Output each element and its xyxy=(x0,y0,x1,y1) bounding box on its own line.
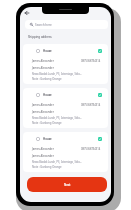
staticText: House xyxy=(43,137,52,141)
staticText: House xyxy=(43,49,52,53)
staticText: James Alexander xyxy=(32,66,54,70)
button[interactable]: Edit address xyxy=(98,49,102,53)
button[interactable]: House xyxy=(23,132,108,172)
staticText: Note : Garbong Orange xyxy=(32,121,62,125)
button[interactable]: Edit address xyxy=(98,137,102,141)
staticText: Shipping address xyxy=(28,35,52,39)
staticText: James Alexander xyxy=(32,110,54,114)
staticText: James Alexander xyxy=(32,103,54,107)
button[interactable]: Edit address xyxy=(98,93,102,97)
button[interactable]: House xyxy=(23,88,108,128)
staticText: James Alexander xyxy=(32,154,54,158)
staticText: 0875368754314 xyxy=(81,147,101,151)
staticText: Note : Garbong Orange xyxy=(32,77,62,81)
staticText: House xyxy=(43,93,52,97)
staticText: 0875368754314 xyxy=(81,59,101,63)
button[interactable]: Search here xyxy=(25,20,108,29)
staticText: Note : Garbong Orange xyxy=(32,165,62,169)
staticText: James Alexander xyxy=(32,59,54,63)
staticText: Search here xyxy=(35,23,52,27)
button[interactable]: Back xyxy=(22,8,31,17)
staticText: Rewa Biadak Lurah, PS, Istemiago, Sida..… xyxy=(32,116,82,120)
staticText: James Alexander xyxy=(32,147,54,151)
button[interactable]: Next xyxy=(27,177,107,192)
button[interactable]: House xyxy=(23,44,108,84)
staticText: Next xyxy=(64,183,71,187)
staticText: 0875368754314 xyxy=(81,103,101,107)
staticText: Rewa Biadak Lurah, PS, Istemiago, Sida..… xyxy=(32,160,82,164)
staticText: Rewa Biadak Lurah, PS, Istemiago, Sida..… xyxy=(32,72,82,76)
